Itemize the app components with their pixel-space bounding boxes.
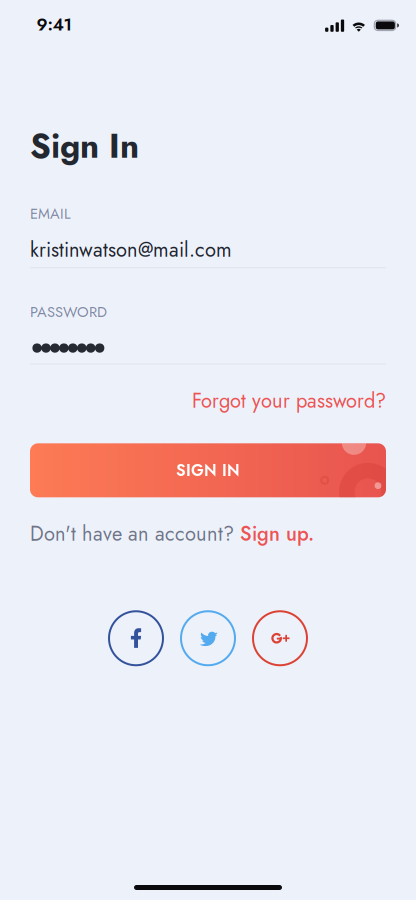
staticText: 9:41 bbox=[37, 12, 73, 37]
staticText: kristinwatson@mail.com bbox=[30, 235, 232, 264]
staticText: Sign up. bbox=[240, 519, 314, 548]
button[interactable]: Sign in with Twitter bbox=[180, 610, 236, 666]
button[interactable]: Sign up. bbox=[240, 519, 314, 548]
button[interactable]: Forgot your password? bbox=[192, 386, 386, 415]
staticText: EMAIL bbox=[30, 203, 71, 224]
button[interactable]: Sign in with Google Plus bbox=[252, 610, 308, 666]
staticText: Don't have an account? bbox=[30, 519, 240, 548]
staticText: SIGN IN bbox=[176, 459, 240, 482]
button[interactable]: SIGN IN bbox=[30, 443, 386, 497]
staticText: PASSWORD bbox=[30, 301, 107, 322]
button[interactable]: Sign in with Facebook bbox=[108, 610, 164, 666]
staticText: Forgot your password? bbox=[192, 386, 386, 415]
staticText: Sign In bbox=[30, 122, 139, 170]
